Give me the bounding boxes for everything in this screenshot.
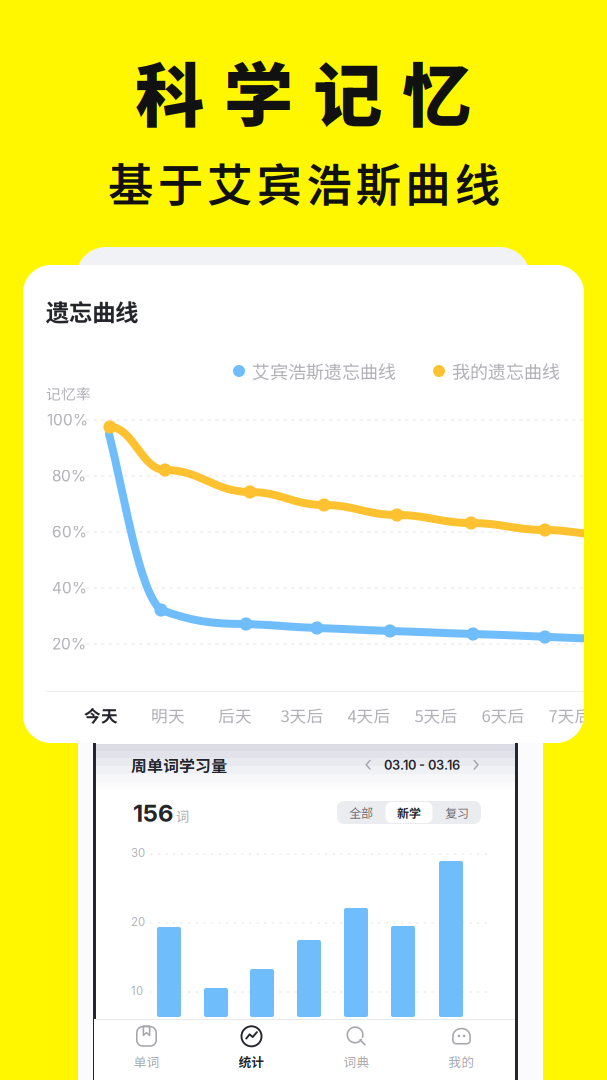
button[interactable]: 复习 <box>434 801 480 824</box>
staticText: 统计 <box>238 1052 264 1071</box>
staticText: 词 <box>176 806 189 826</box>
staticText: 80% <box>52 467 86 485</box>
button[interactable]: 统计 <box>199 1019 304 1077</box>
button[interactable]: 全部 <box>338 801 384 824</box>
button[interactable]: 词典 <box>304 1019 409 1077</box>
staticText: 30 <box>131 846 145 860</box>
staticText: 20% <box>52 635 86 653</box>
staticText: 词典 <box>343 1052 369 1071</box>
staticText: 156 <box>133 798 173 827</box>
staticText: 后天 <box>218 703 252 727</box>
staticText: 4天后 <box>347 703 390 727</box>
staticText: 基于艾宾浩斯曲线 <box>108 149 500 215</box>
staticText: 我的遗忘曲线 <box>452 358 560 384</box>
staticText: 03.10 - 03.16 <box>384 757 460 773</box>
button[interactable]: 新学 <box>384 801 434 824</box>
staticText: 20 <box>131 915 145 929</box>
staticText: 10 <box>131 984 143 998</box>
staticText: 7天后 <box>548 703 591 727</box>
staticText: 3天后 <box>280 703 323 727</box>
staticText: 我的 <box>448 1052 474 1071</box>
staticText: 60% <box>52 523 87 541</box>
staticText: 新学 <box>397 804 421 821</box>
staticText: 明天 <box>151 703 185 727</box>
button[interactable]: 我的 <box>409 1019 514 1077</box>
staticText: 全部 <box>349 804 373 821</box>
staticText: 单词 <box>133 1052 159 1071</box>
button[interactable]: 03.10 - 03.16 <box>364 754 480 776</box>
staticText: 科学记忆 <box>135 40 471 141</box>
staticText: 复习 <box>445 804 469 821</box>
button[interactable]: 单词 <box>94 1019 199 1077</box>
staticText: 记忆率 <box>46 382 91 404</box>
staticText: 100% <box>47 411 88 429</box>
staticText: 5天后 <box>414 703 457 727</box>
staticText: 艾宾浩斯遗忘曲线 <box>252 358 396 384</box>
staticText: 遗忘曲线 <box>46 294 138 328</box>
staticText: 6天后 <box>481 703 524 727</box>
staticText: 今天 <box>84 703 118 727</box>
staticText: 40% <box>52 579 87 597</box>
staticText: 周单词学习量 <box>131 753 227 777</box>
